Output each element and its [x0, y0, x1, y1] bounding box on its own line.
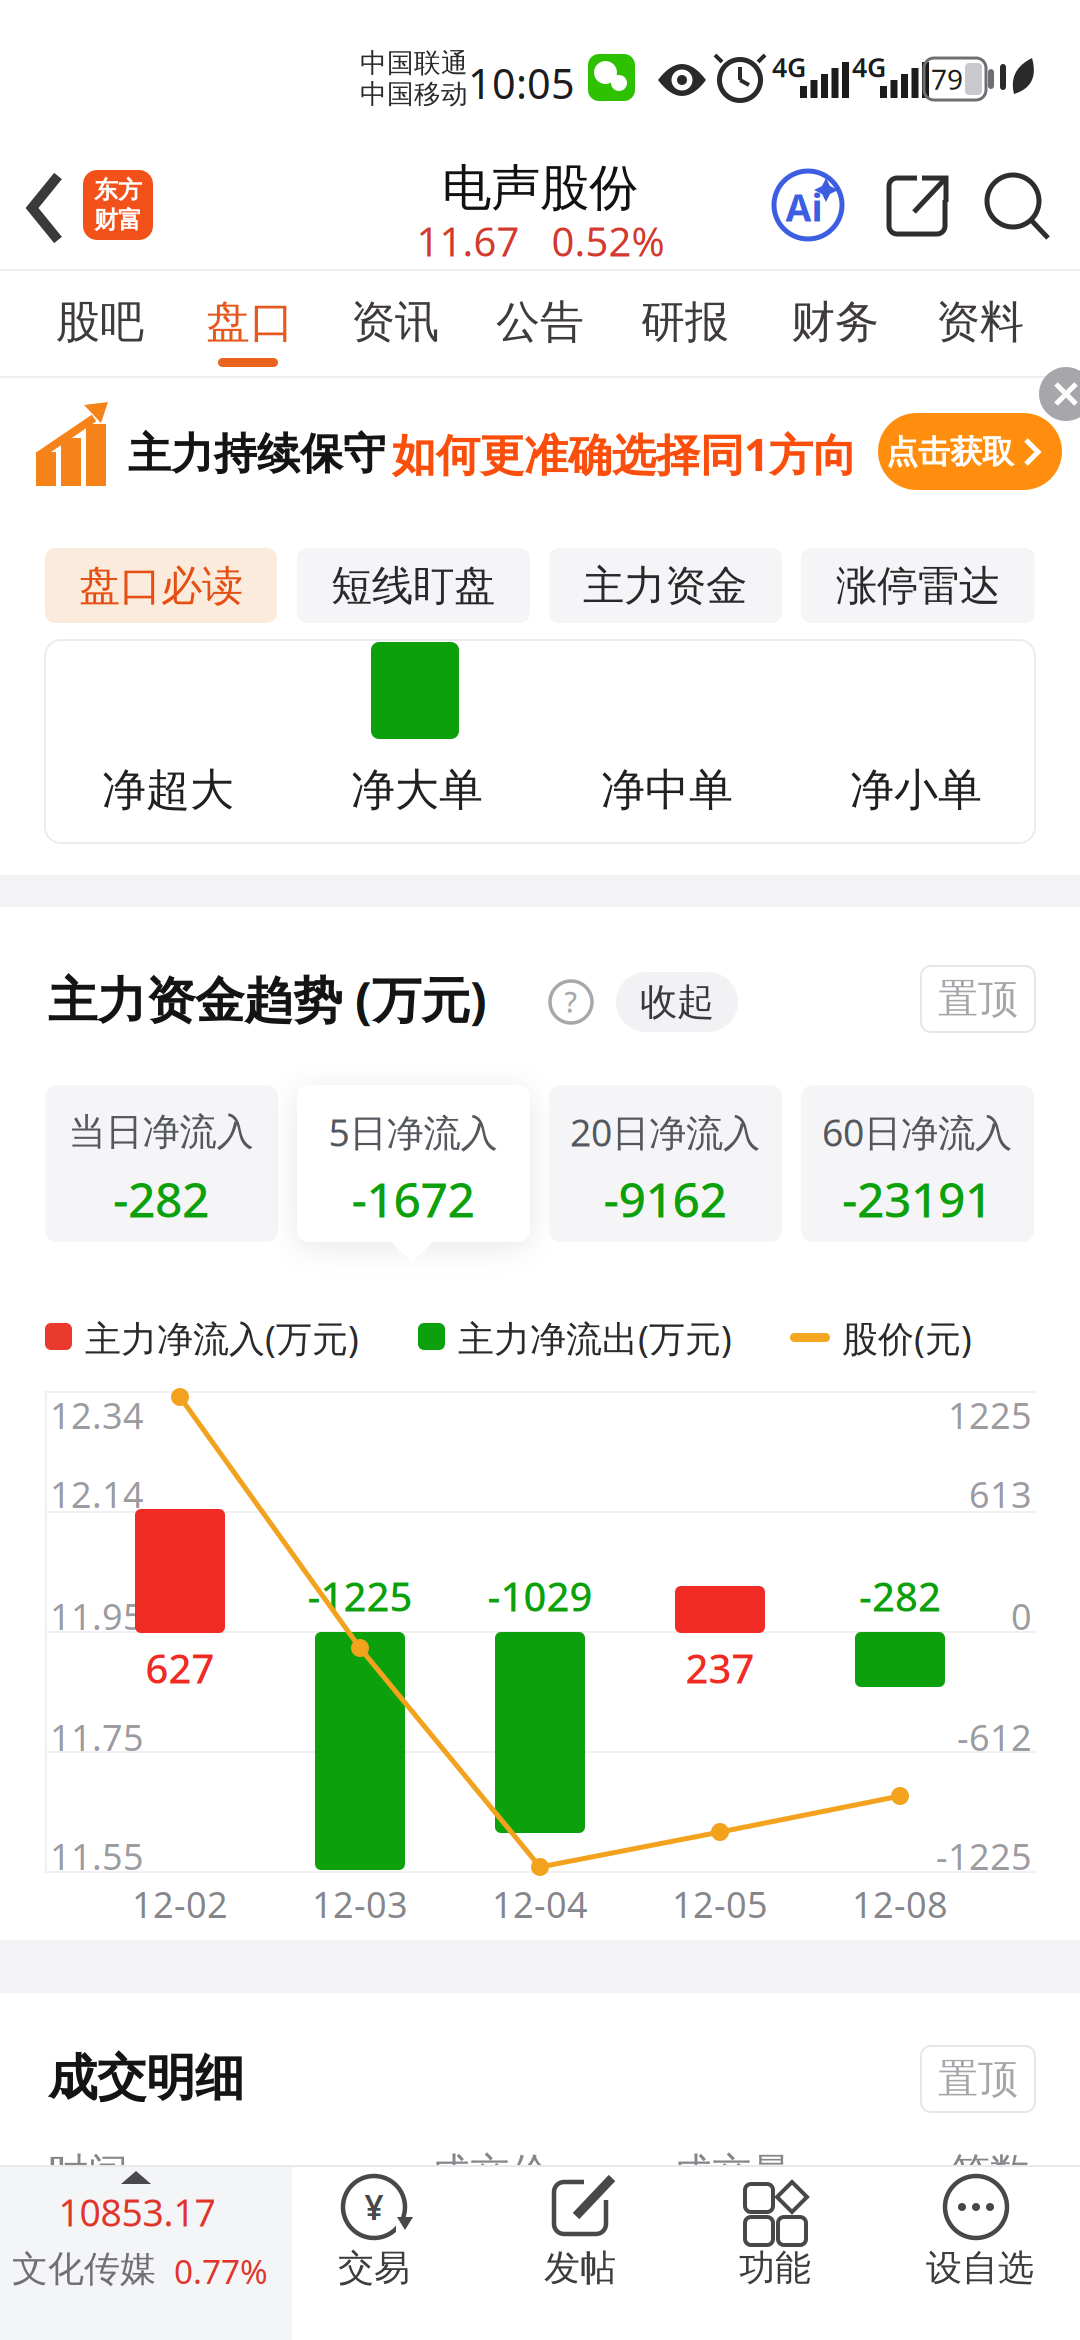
- staticText: 4G: [772, 49, 806, 85]
- staticText: -1225: [307, 1569, 412, 1622]
- staticText: 11.55: [50, 1832, 144, 1880]
- staticText: 置顶: [938, 974, 1018, 1023]
- staticText: 点击获取: [886, 432, 1014, 472]
- staticText: 12-04: [492, 1880, 588, 1928]
- staticText: 60日净流入: [822, 1107, 1012, 1157]
- staticText: 财务: [791, 295, 879, 349]
- staticText: 12-02: [132, 1880, 228, 1928]
- staticText: 79: [931, 60, 963, 98]
- staticText: 11.95: [50, 1592, 144, 1640]
- staticText: -282: [859, 1569, 941, 1622]
- staticText: 中国移动: [360, 78, 468, 110]
- staticText: 财富: [94, 205, 142, 235]
- staticText: 股吧: [56, 295, 144, 349]
- staticText: 交易: [338, 2246, 410, 2290]
- staticText: -1672: [351, 1167, 474, 1231]
- staticText: 0.77%: [174, 2249, 268, 2293]
- staticText: 功能: [739, 2246, 811, 2290]
- staticText: 东方: [94, 175, 142, 205]
- staticText: 资讯: [351, 295, 439, 349]
- staticText: -1225: [936, 1832, 1032, 1880]
- staticText: 中国联通: [360, 47, 468, 79]
- staticText: 股价(元): [842, 1314, 972, 1362]
- staticText: 12.34: [50, 1391, 144, 1439]
- staticText: 主力资金趋势 (万元): [48, 966, 487, 1032]
- staticText: 613: [969, 1470, 1032, 1518]
- staticText: 当日净流入: [68, 1109, 253, 1155]
- staticText: 发帖: [544, 2246, 616, 2290]
- staticText: 主力净流入(万元): [85, 1314, 359, 1362]
- staticText: -9162: [603, 1167, 726, 1231]
- staticText: -23191: [842, 1167, 992, 1231]
- staticText: 10853.17: [58, 2187, 215, 2237]
- staticText: 电声股份: [442, 158, 638, 218]
- staticText: 盘口: [206, 295, 294, 349]
- staticText: 设自选: [926, 2246, 1034, 2290]
- staticText: 主力净流出(万元): [458, 1314, 732, 1362]
- staticText: 627: [145, 1641, 214, 1694]
- staticText: 10:05: [468, 56, 575, 110]
- staticText: 主力持续保守: [128, 428, 386, 480]
- staticText: 文化传媒: [12, 2247, 156, 2291]
- staticText: -282: [113, 1167, 209, 1231]
- staticText: 研报: [641, 295, 729, 349]
- staticText: 成交明细: [48, 2048, 244, 2108]
- staticText: Ai: [785, 182, 822, 232]
- staticText: 时间: [48, 2148, 128, 2197]
- staticText: 12-05: [672, 1880, 768, 1928]
- staticText: 0: [1011, 1592, 1032, 1640]
- staticText: 如何更准确选择同1方向: [392, 425, 857, 483]
- staticText: 净超大: [102, 763, 234, 817]
- staticText: 11.67: [416, 214, 519, 267]
- staticText: 短线盯盘: [331, 561, 495, 611]
- staticText: 1225: [948, 1391, 1032, 1439]
- staticText: ¥: [364, 2185, 383, 2229]
- staticText: 净中单: [601, 763, 733, 817]
- staticText: 涨停雷达: [836, 561, 1000, 611]
- staticText: 12-08: [852, 1880, 948, 1928]
- staticText: 11.75: [50, 1713, 144, 1761]
- staticText: 净大单: [351, 763, 483, 817]
- staticText: 净小单: [850, 763, 982, 817]
- staticText: ?: [564, 983, 577, 1021]
- staticText: 成交价: [430, 2148, 550, 2197]
- staticText: 资料: [936, 295, 1024, 349]
- staticText: 主力资金: [583, 561, 747, 611]
- staticText: 笔数: [950, 2148, 1030, 2197]
- staticText: 公告: [496, 295, 584, 349]
- staticText: -1029: [487, 1569, 592, 1622]
- staticText: 5日净流入: [328, 1107, 497, 1157]
- staticText: 0.52%: [551, 214, 664, 267]
- staticText: 12-03: [312, 1880, 408, 1928]
- staticText: 成交量: [672, 2148, 792, 2197]
- staticText: 4G: [852, 49, 886, 85]
- staticText: 置顶: [938, 2054, 1018, 2103]
- staticText: 237: [685, 1641, 754, 1694]
- staticText: 20日净流入: [570, 1107, 760, 1157]
- staticText: 收起: [640, 979, 714, 1025]
- staticText: -612: [957, 1713, 1032, 1761]
- staticText: 12.14: [50, 1470, 144, 1518]
- staticText: 盘口必读: [79, 561, 243, 611]
